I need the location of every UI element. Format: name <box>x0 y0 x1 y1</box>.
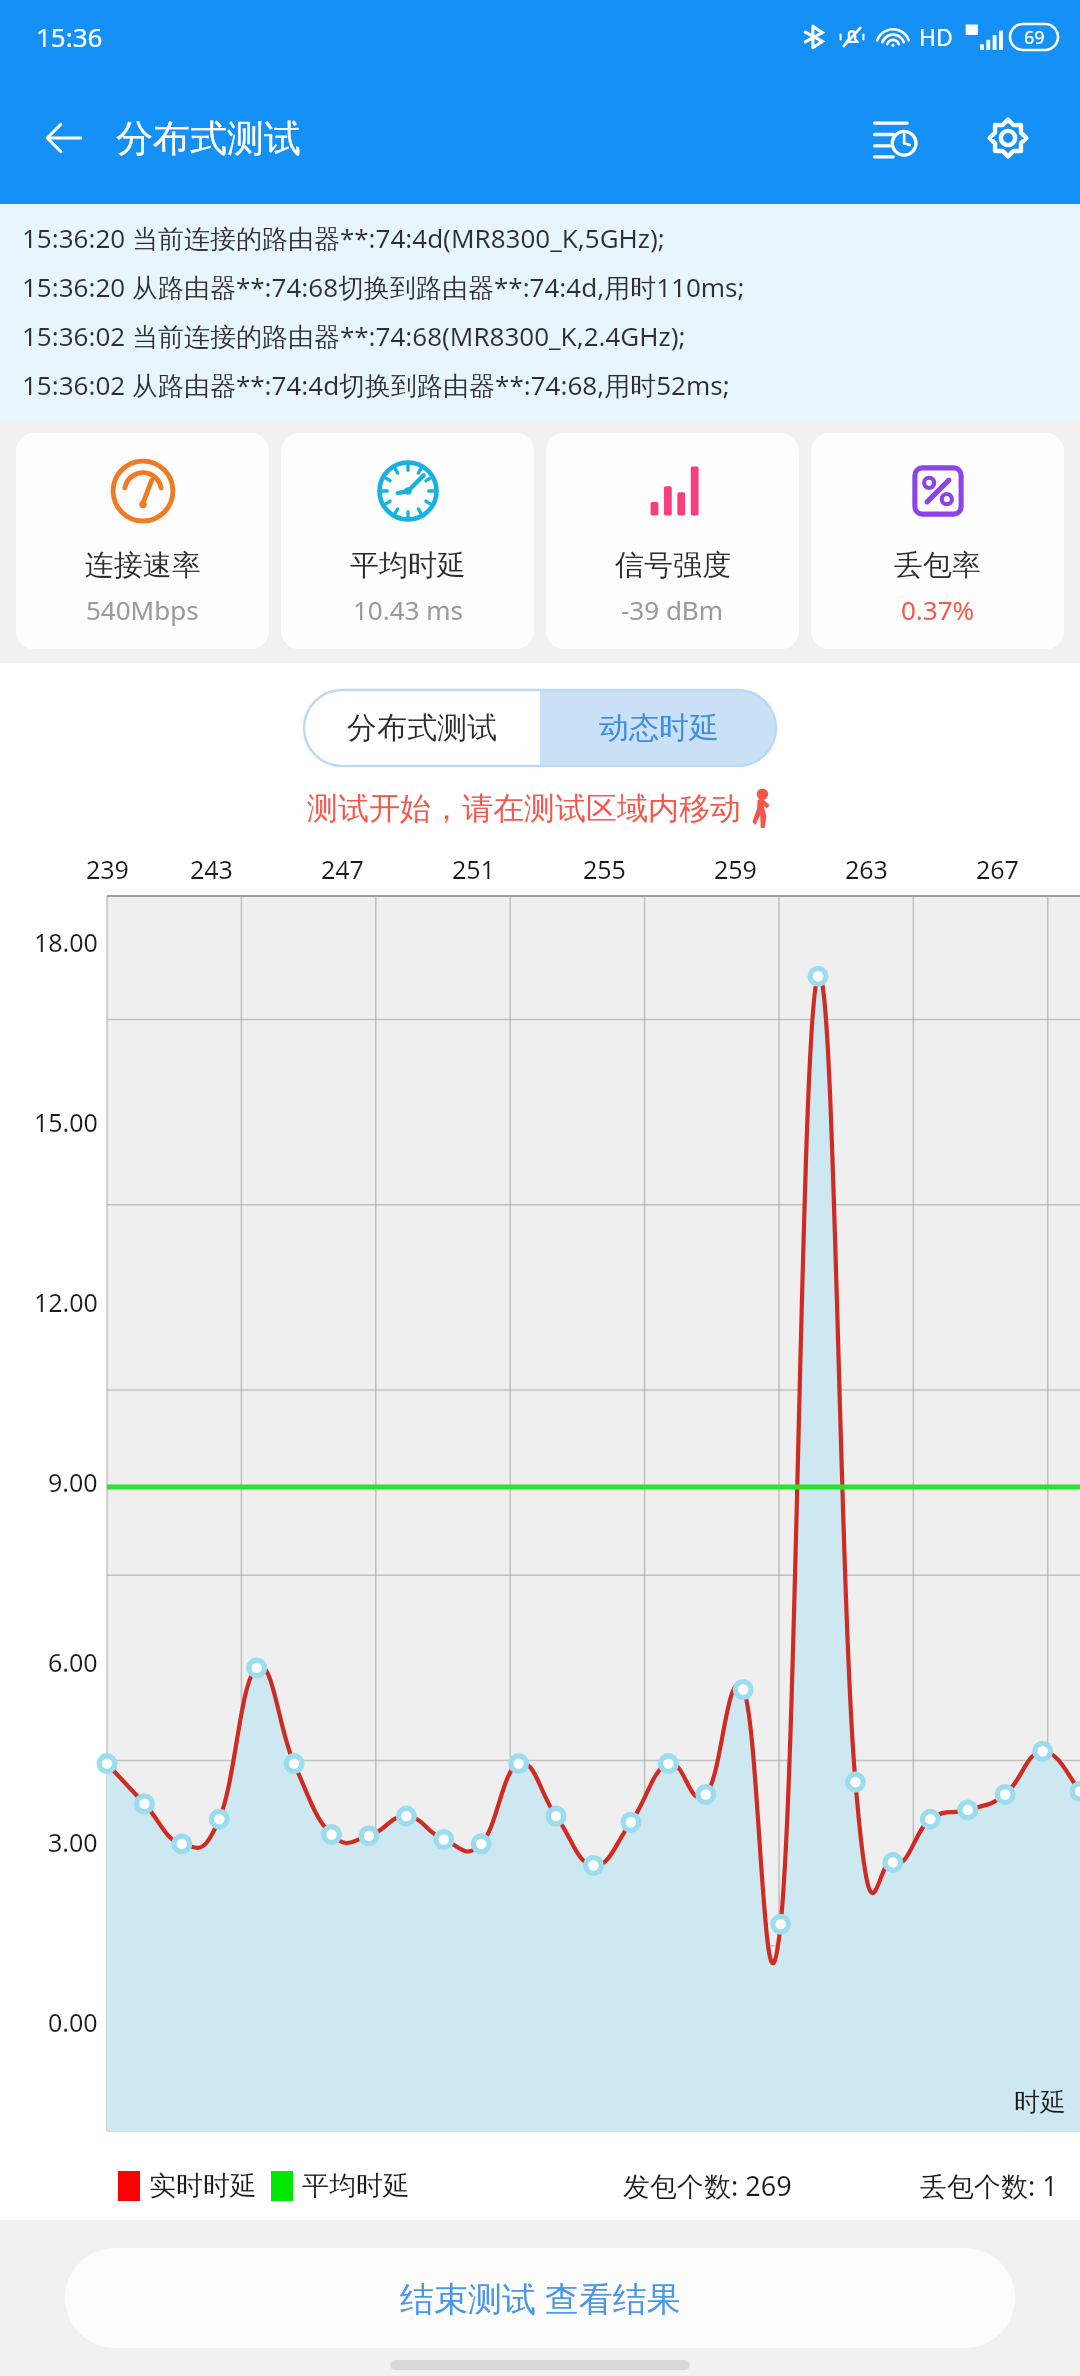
staticText: 239 <box>86 852 129 886</box>
staticText: 540Mbps <box>86 592 199 627</box>
staticText: 18.00 <box>34 925 98 959</box>
staticText: 丢包率 <box>894 547 981 584</box>
staticText: 6.00 <box>48 1645 98 1679</box>
staticText: 平均时延 <box>350 547 466 584</box>
staticText: 平均时延 <box>302 2169 410 2203</box>
staticText: 丢包个数: 1 <box>920 2167 1058 2204</box>
staticText: 3.00 <box>48 1825 98 1859</box>
button[interactable]: 丢包率 <box>811 433 1064 649</box>
staticText: 发包个数: 269 <box>623 2167 792 2204</box>
button[interactable]: 平均时延 <box>281 433 534 649</box>
button[interactable]: 分布式测试 <box>303 689 540 767</box>
staticText: 15:36:02 从路由器**:74:4d切换到路由器**:74:68,用时52… <box>22 367 730 403</box>
staticText: 分布式测试 <box>116 115 301 162</box>
staticText: 12.00 <box>34 1285 98 1319</box>
staticText: 信号强度 <box>615 547 731 584</box>
staticText: HD <box>919 21 953 52</box>
staticText: 15:36:02 当前连接的路由器**:74:68(MR8300_K,2.4GH… <box>22 318 686 354</box>
staticText: 15:36:20 从路由器**:74:68切换到路由器**:74:4d,用时11… <box>22 269 745 305</box>
staticText: 247 <box>321 852 364 886</box>
staticText: 9.00 <box>48 1465 98 1499</box>
staticText: 255 <box>583 852 626 886</box>
staticText: 结束测试 查看结果 <box>400 2275 681 2321</box>
staticText: 分布式测试 <box>347 709 497 747</box>
button[interactable]: 信号强度 <box>546 433 799 649</box>
staticText: 10.43 ms <box>353 592 463 627</box>
button[interactable]: 结束测试 查看结果 <box>65 2248 1015 2348</box>
staticText: 251 <box>452 852 495 886</box>
staticText: 15.00 <box>34 1105 98 1139</box>
staticText: 243 <box>190 852 233 886</box>
staticText: 时延 <box>1014 2086 1066 2119</box>
button[interactable]: Settings <box>966 96 1050 180</box>
staticText: 259 <box>714 852 757 886</box>
button[interactable]: 动态时延 <box>540 689 777 767</box>
staticText: 测试开始，请在测试区域内移动 <box>307 789 741 828</box>
staticText: 263 <box>845 852 888 886</box>
staticText: 0.00 <box>48 2005 98 2039</box>
staticText: 动态时延 <box>599 709 719 747</box>
staticText: 实时时延 <box>149 2169 257 2203</box>
staticText: -39 dBm <box>621 592 724 627</box>
button[interactable]: 连接速率 <box>16 433 269 649</box>
button[interactable]: History <box>852 96 936 180</box>
staticText: 267 <box>976 852 1019 886</box>
staticText: 0.37% <box>901 592 975 627</box>
button[interactable]: Back <box>26 100 102 176</box>
staticText: 15:36 <box>36 19 103 54</box>
staticText: 15:36:20 当前连接的路由器**:74:4d(MR8300_K,5GHz)… <box>22 220 665 256</box>
staticText: 连接速率 <box>85 547 201 584</box>
staticText: 69 <box>1024 25 1045 50</box>
